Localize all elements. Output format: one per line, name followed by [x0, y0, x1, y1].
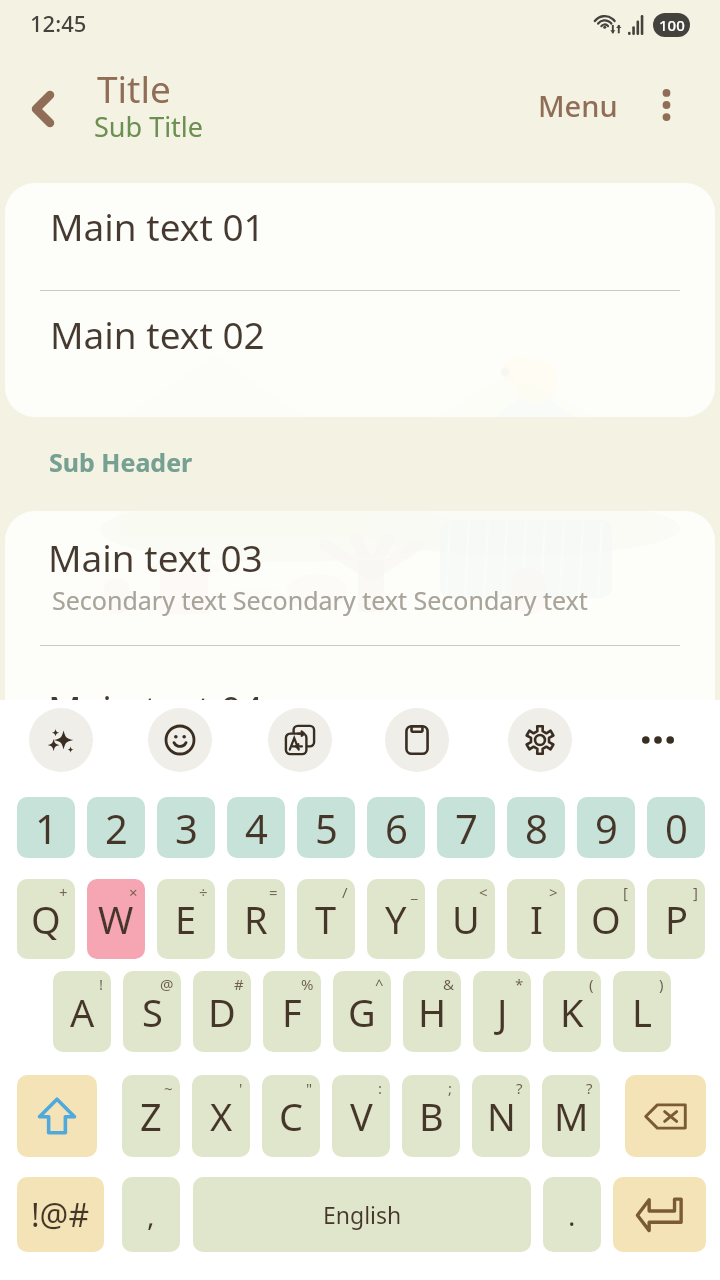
staticText: Z — [140, 1090, 162, 1142]
button[interactable]: . — [543, 1177, 601, 1252]
button[interactable]: Translate — [268, 708, 332, 772]
staticText: 8 — [525, 801, 548, 855]
button[interactable]: P — [647, 879, 705, 959]
staticText: × — [129, 882, 138, 902]
button[interactable]: A — [53, 971, 111, 1052]
button[interactable]: !@# — [17, 1177, 104, 1252]
button[interactable]: Enter — [613, 1177, 706, 1252]
button[interactable]: Sparkle — [29, 708, 93, 772]
button[interactable]: U — [437, 879, 495, 959]
button[interactable]: M — [542, 1075, 600, 1157]
button[interactable]: Main text 04 — [5, 647, 715, 731]
button[interactable]: Main text 02 — [5, 291, 715, 417]
staticText: . — [568, 1196, 576, 1234]
button[interactable]: F — [263, 971, 321, 1052]
staticText: Sub Header — [49, 445, 193, 479]
button[interactable]: 3 — [157, 797, 215, 858]
button[interactable]: C — [262, 1075, 320, 1157]
staticText: < — [479, 882, 488, 902]
staticText: / — [342, 882, 348, 902]
staticText: A — [70, 986, 95, 1038]
staticText: M — [554, 1090, 589, 1142]
button[interactable]: Z — [122, 1075, 180, 1157]
button[interactable]: O — [577, 879, 635, 959]
staticText: Secondary text Secondary text Secondary … — [52, 583, 588, 617]
button[interactable]: B — [402, 1075, 460, 1157]
staticText: 3 — [175, 801, 198, 855]
button[interactable]: E — [157, 879, 215, 959]
staticText: 2 — [105, 801, 128, 855]
staticText: Main text 04 — [48, 683, 263, 731]
button[interactable]: Main text 03 — [5, 511, 715, 645]
button[interactable]: Menu — [524, 76, 632, 134]
button[interactable]: Settings — [508, 708, 572, 772]
button[interactable]: 9 — [577, 797, 635, 858]
staticText: F — [282, 986, 302, 1038]
staticText: ! — [99, 974, 104, 994]
button[interactable]: S — [123, 971, 181, 1052]
button[interactable]: Q — [17, 879, 75, 959]
staticText: @ — [160, 974, 174, 994]
staticText: English — [323, 1199, 402, 1230]
staticText: I — [530, 893, 543, 945]
button[interactable]: 5 — [297, 797, 355, 858]
button[interactable]: 7 — [437, 797, 495, 858]
button[interactable]: 6 — [367, 797, 425, 858]
button[interactable]: T — [297, 879, 355, 959]
staticText: Main text 02 — [50, 309, 265, 359]
button[interactable]: D — [193, 971, 251, 1052]
staticText: X — [210, 1090, 233, 1142]
staticText: Y — [385, 893, 407, 945]
button[interactable]: R — [227, 879, 285, 959]
staticText: V — [350, 1090, 373, 1142]
button[interactable]: W — [87, 879, 145, 959]
button[interactable]: V — [332, 1075, 390, 1157]
button[interactable]: Y — [367, 879, 425, 959]
button[interactable]: , — [122, 1177, 180, 1252]
button[interactable]: Shift — [17, 1075, 97, 1157]
button[interactable]: More — [626, 708, 690, 772]
button[interactable]: K — [543, 971, 601, 1052]
button[interactable]: Backspace — [625, 1075, 706, 1157]
staticText: = — [269, 882, 278, 902]
button[interactable]: 4 — [227, 797, 285, 858]
button[interactable]: 1 — [17, 797, 75, 858]
staticText: 6 — [385, 801, 408, 855]
staticText: O — [591, 893, 621, 945]
button[interactable]: Emoji — [148, 708, 212, 772]
button[interactable]: 8 — [507, 797, 565, 858]
staticText: S — [142, 986, 163, 1038]
button[interactable]: Clipboard — [385, 708, 449, 772]
button[interactable]: J — [473, 971, 531, 1052]
staticText: * — [515, 974, 524, 994]
staticText: 5 — [315, 801, 338, 855]
staticText: 12:45 — [30, 8, 87, 38]
button[interactable]: Main text 01 — [5, 183, 715, 290]
staticText: 0 — [665, 801, 688, 855]
staticText: !@# — [31, 1193, 90, 1237]
button[interactable]: Sub Header — [30, 440, 230, 486]
staticText: & — [443, 974, 454, 994]
staticText: _ — [411, 882, 418, 902]
button[interactable]: H — [403, 971, 461, 1052]
button[interactable]: I — [507, 879, 565, 959]
button[interactable]: More options — [638, 76, 694, 134]
staticText: ' — [239, 1078, 243, 1098]
button[interactable]: N — [472, 1075, 530, 1157]
button[interactable]: 2 — [87, 797, 145, 858]
staticText: ~ — [164, 1078, 173, 1098]
staticText: 100 — [659, 15, 685, 35]
button[interactable]: Back — [14, 80, 72, 138]
staticText: ; — [448, 1078, 453, 1098]
button[interactable]: English — [193, 1177, 531, 1252]
button[interactable]: L — [613, 971, 671, 1052]
staticText: " — [306, 1078, 313, 1098]
button[interactable]: G — [333, 971, 391, 1052]
staticText: ? — [516, 1078, 523, 1098]
staticText: T — [315, 893, 337, 945]
staticText: W — [98, 893, 134, 945]
button[interactable]: X — [192, 1075, 250, 1157]
staticText: , — [147, 1196, 155, 1234]
staticText: C — [279, 1090, 304, 1142]
button[interactable]: 0 — [647, 797, 705, 858]
